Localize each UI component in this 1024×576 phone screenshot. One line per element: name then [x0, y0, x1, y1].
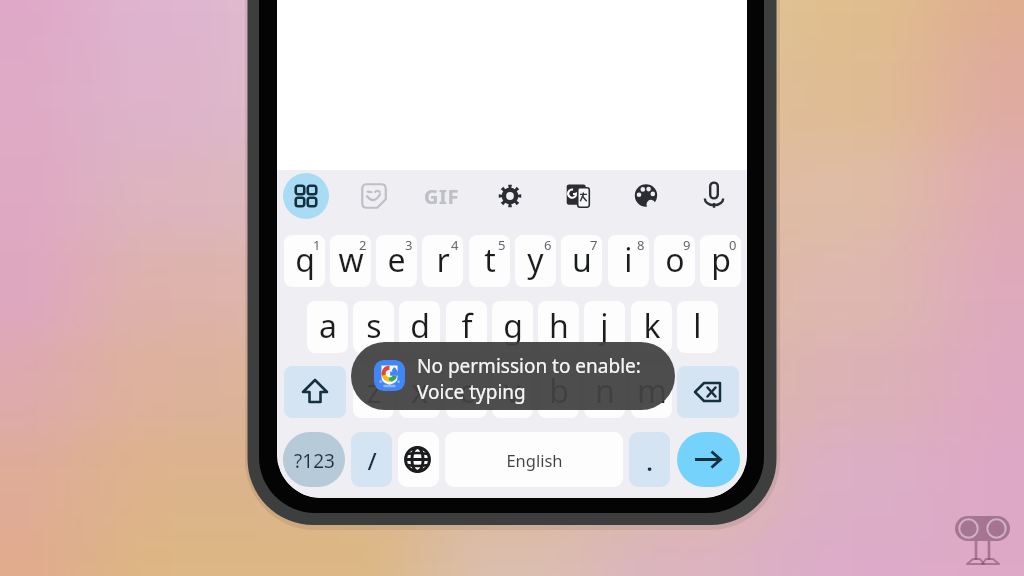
button[interactable]: s — [353, 301, 394, 353]
staticText: s — [366, 304, 382, 348]
button[interactable]: Settings — [487, 173, 533, 219]
button[interactable]: Backspace — [677, 366, 739, 418]
staticText: / — [367, 444, 377, 477]
staticText: u — [572, 238, 592, 282]
staticText: l — [693, 304, 702, 348]
button[interactable]: No permission to enable: — [351, 342, 675, 410]
staticText: j — [600, 304, 609, 348]
button[interactable]: GIF — [419, 173, 465, 219]
staticText: 3 — [405, 236, 413, 254]
staticText: w — [338, 238, 364, 282]
staticText: No permission to enable: — [417, 353, 641, 379]
staticText: z — [366, 369, 382, 413]
staticText: d — [410, 304, 430, 348]
staticText: f — [461, 304, 473, 348]
button[interactable]: e — [376, 235, 417, 287]
button[interactable]: Themes — [623, 173, 669, 219]
staticText: t — [484, 238, 496, 282]
staticText: x — [411, 369, 428, 413]
button[interactable]: r — [422, 235, 463, 287]
button[interactable]: q — [284, 235, 325, 287]
button[interactable]: c — [446, 366, 487, 418]
staticText: i — [624, 238, 633, 282]
button[interactable]: . — [629, 432, 670, 487]
button[interactable]: Keyboard modes — [283, 173, 329, 219]
staticText: b — [549, 369, 569, 413]
staticText: 7 — [590, 236, 598, 254]
staticText: 9 — [683, 236, 691, 254]
button[interactable]: Stickers — [351, 173, 397, 219]
button[interactable]: / — [351, 432, 392, 487]
button[interactable]: u — [561, 235, 602, 287]
button[interactable]: g — [492, 301, 533, 353]
staticText: y — [527, 238, 544, 282]
button[interactable]: Translate — [555, 173, 601, 219]
staticText: q — [295, 238, 315, 282]
staticText: e — [387, 238, 406, 282]
button[interactable]: k — [631, 301, 672, 353]
staticText: g — [503, 304, 523, 348]
button[interactable]: f — [446, 301, 487, 353]
button[interactable]: y — [515, 235, 556, 287]
button[interactable]: h — [538, 301, 579, 353]
staticText: r — [436, 238, 450, 282]
staticText: . — [646, 447, 653, 477]
button[interactable]: English — [445, 432, 623, 487]
staticText: 6 — [544, 236, 552, 254]
staticText: 4 — [451, 236, 459, 254]
staticText: o — [665, 238, 685, 282]
staticText: p — [711, 238, 731, 282]
button[interactable]: z — [353, 366, 394, 418]
staticText: English — [506, 449, 563, 471]
button[interactable]: Enter — [677, 432, 740, 487]
staticText: 1 — [313, 236, 321, 254]
staticText: v — [504, 369, 521, 413]
button[interactable]: p — [700, 235, 741, 287]
button[interactable]: t — [469, 235, 510, 287]
button[interactable]: Shift — [284, 366, 346, 418]
button[interactable]: o — [654, 235, 695, 287]
button[interactable]: a — [307, 301, 348, 353]
button[interactable]: d — [399, 301, 440, 353]
button[interactable]: ?123 — [283, 432, 345, 487]
button[interactable]: j — [584, 301, 625, 353]
staticText: h — [549, 304, 569, 348]
button[interactable]: b — [538, 366, 579, 418]
button[interactable]: n — [584, 366, 625, 418]
staticText: ?123 — [294, 448, 335, 474]
button[interactable]: l — [677, 301, 718, 353]
button[interactable]: v — [492, 366, 533, 418]
staticText: m — [637, 369, 667, 413]
staticText: 5 — [498, 236, 506, 254]
button[interactable]: i — [608, 235, 649, 287]
staticText: n — [595, 369, 615, 413]
button[interactable]: x — [399, 366, 440, 418]
staticText: 2 — [359, 236, 367, 254]
button[interactable]: w — [330, 235, 371, 287]
button[interactable]: m — [631, 366, 672, 418]
staticText: a — [319, 304, 337, 348]
button[interactable]: Voice typing — [691, 173, 737, 219]
button[interactable]: Change language — [398, 432, 439, 487]
staticText: 8 — [637, 236, 645, 254]
staticText: GIF — [424, 183, 460, 210]
staticText: c — [459, 369, 475, 413]
staticText: k — [643, 304, 661, 348]
staticText: 0 — [729, 236, 737, 254]
staticText: Voice typing — [417, 379, 526, 405]
